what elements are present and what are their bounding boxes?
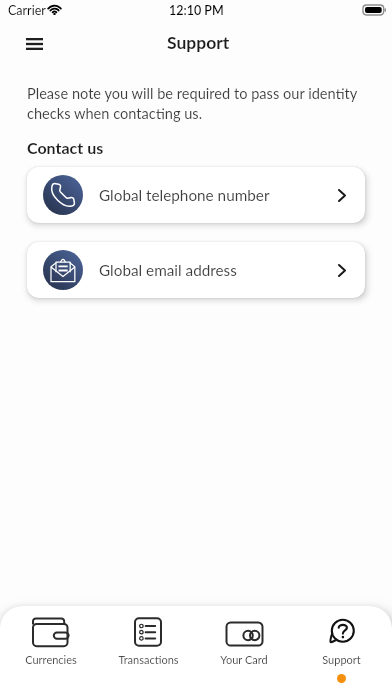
staticText: Support	[167, 32, 230, 53]
staticText: Contact us	[27, 138, 104, 157]
staticText: 12:10 PM	[169, 3, 224, 18]
button[interactable]: Global email address	[27, 242, 365, 298]
staticText: Support	[322, 653, 361, 666]
staticText: Transactions	[118, 653, 179, 666]
button[interactable]: Transactions	[103, 617, 193, 674]
button[interactable]: Menu	[15, 23, 53, 61]
button[interactable]: Currencies	[6, 617, 96, 674]
staticText: Carrier	[8, 3, 46, 18]
button[interactable]: Your Card	[199, 617, 289, 674]
staticText: Please note you will be required to pass…	[27, 85, 372, 122]
staticText: Your Card	[220, 653, 268, 666]
staticText: Global email address	[99, 261, 237, 279]
staticText: Global telephone number	[99, 186, 270, 204]
staticText: Currencies	[25, 653, 77, 666]
button[interactable]: Global telephone number	[27, 167, 365, 223]
button[interactable]: Support	[296, 617, 386, 683]
